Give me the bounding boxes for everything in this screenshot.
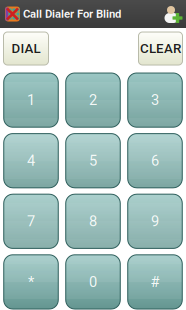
button[interactable]: 5 (66, 134, 120, 188)
button[interactable]: 6 (128, 134, 182, 188)
staticText: 4 (27, 152, 35, 169)
staticText: 0 (89, 273, 97, 290)
staticText: 7 (27, 213, 35, 230)
staticText: 5 (89, 152, 97, 169)
button[interactable]: # (128, 255, 182, 309)
staticText: 8 (89, 213, 97, 230)
button[interactable]: 7 (4, 194, 58, 248)
button[interactable]: * (4, 255, 58, 309)
staticText: 1 (27, 91, 35, 109)
button[interactable]: Add contact (163, 4, 186, 23)
staticText: # (150, 273, 159, 290)
button[interactable]: 3 (128, 73, 182, 127)
button[interactable]: 8 (66, 194, 120, 248)
staticText: 6 (151, 152, 159, 169)
button[interactable]: 0 (66, 255, 120, 309)
button[interactable]: DIAL (3, 32, 48, 65)
button[interactable]: 4 (4, 134, 58, 188)
button[interactable]: 2 (66, 73, 120, 127)
staticText: CLEAR (140, 41, 181, 56)
staticText: 9 (151, 213, 159, 230)
staticText: Call Dialer For Blind (23, 7, 121, 21)
staticText: 2 (89, 91, 97, 109)
button[interactable]: 9 (128, 194, 182, 248)
button[interactable]: CLEAR (138, 32, 182, 65)
button[interactable]: 1 (4, 73, 58, 127)
staticText: * (28, 273, 34, 290)
staticText: 3 (151, 91, 159, 109)
staticText: DIAL (11, 41, 40, 56)
